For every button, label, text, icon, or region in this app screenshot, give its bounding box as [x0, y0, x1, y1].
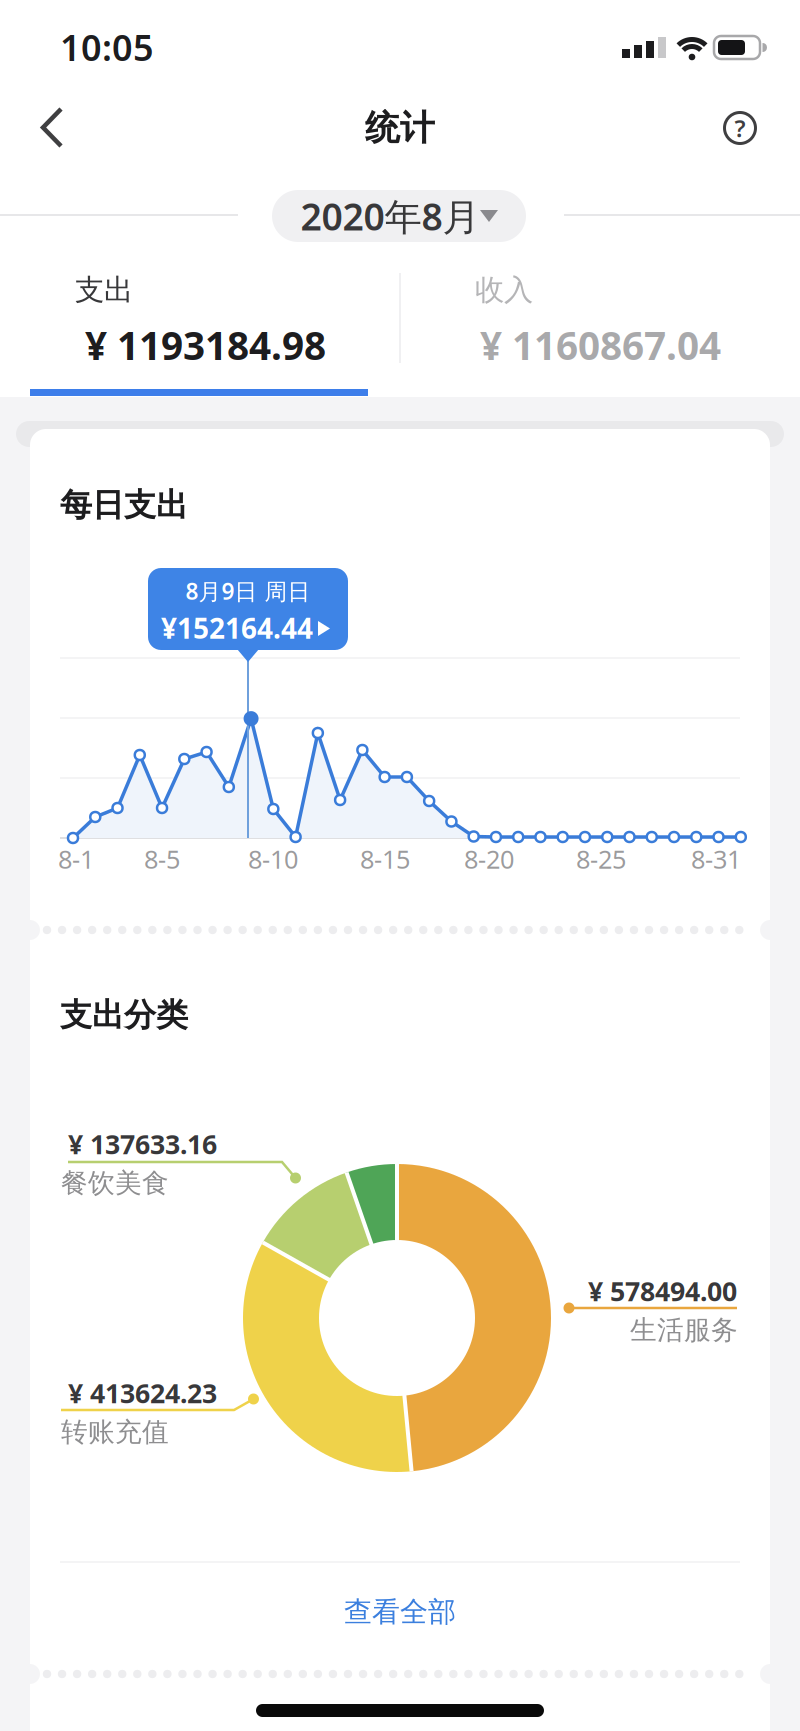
staticText: 支出: [75, 272, 133, 308]
button[interactable]: [15, 265, 383, 385]
staticText: ¥ 137633.16: [68, 1126, 217, 1162]
staticText: ¥ 1193184.98: [85, 319, 326, 371]
staticText: 8-1: [58, 842, 94, 876]
staticText: 每日支出: [60, 485, 188, 525]
staticText: 查看全部: [344, 1595, 456, 1629]
staticText: 10:05: [60, 23, 154, 71]
staticText: 8月9日 周日: [185, 576, 310, 606]
staticText: 8-20: [464, 842, 514, 876]
staticText: 2020年8月: [300, 191, 479, 241]
staticText: 8-31: [691, 842, 741, 876]
staticText: 8-10: [248, 842, 298, 876]
staticText: 转账充值: [61, 1416, 169, 1448]
staticText: 8-5: [144, 842, 180, 876]
staticText: 收入: [475, 272, 533, 308]
staticText: 统计: [365, 107, 435, 149]
button[interactable]: ?: [716, 104, 764, 152]
button[interactable]: [272, 190, 526, 242]
staticText: 8-25: [576, 842, 626, 876]
staticText: 生活服务: [630, 1314, 738, 1346]
button[interactable]: 查看全部: [300, 1577, 500, 1647]
staticText: ¥ 1160867.04: [480, 319, 721, 371]
staticText: ?: [734, 112, 745, 144]
button[interactable]: [148, 568, 348, 650]
staticText: 餐饮美食: [61, 1167, 169, 1199]
staticText: ¥ 578494.00: [588, 1273, 737, 1309]
button[interactable]: [24, 100, 80, 156]
staticText: 支出分类: [60, 995, 188, 1035]
staticText: ¥152164.44: [161, 609, 313, 647]
staticText: 8-15: [360, 842, 410, 876]
staticText: ¥ 413624.23: [68, 1375, 217, 1411]
button[interactable]: [415, 265, 783, 385]
